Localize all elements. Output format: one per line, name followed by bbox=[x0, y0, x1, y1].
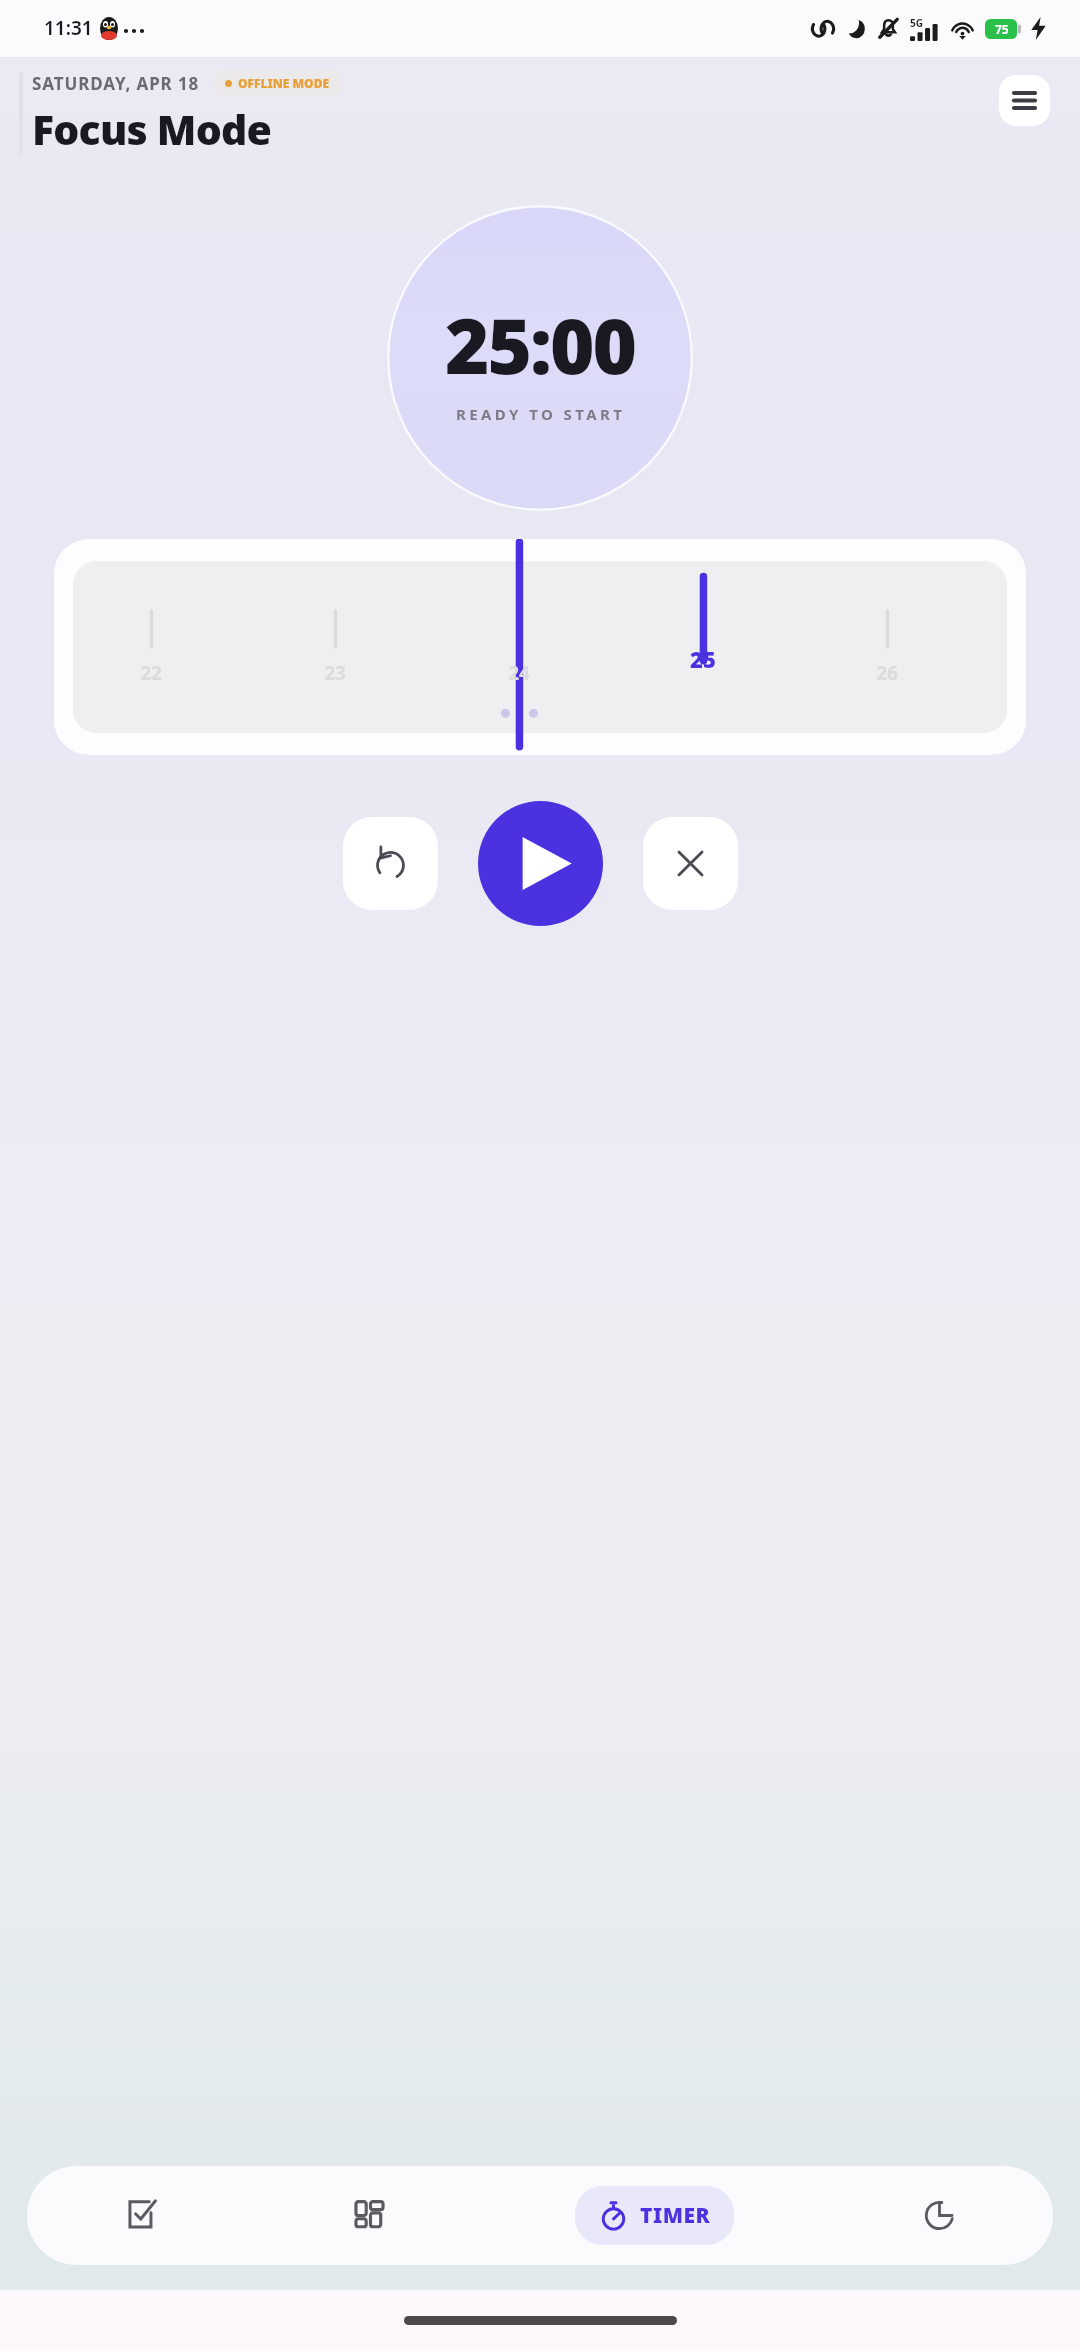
staticText: 22 bbox=[140, 660, 162, 686]
button[interactable]: Menu bbox=[999, 75, 1050, 126]
button[interactable]: Dashboard bbox=[255, 2166, 483, 2265]
staticText: 26 bbox=[876, 660, 898, 686]
staticText: 25:00 bbox=[445, 293, 636, 397]
button[interactable]: Stats bbox=[825, 2166, 1053, 2265]
button[interactable]: Start bbox=[478, 801, 603, 926]
button[interactable]: Cancel bbox=[643, 817, 738, 910]
staticText: READY TO START bbox=[456, 404, 626, 424]
staticText: SATURDAY, APR 18 bbox=[32, 72, 200, 95]
staticText: 23 bbox=[324, 660, 346, 686]
button[interactable]: Tasks bbox=[27, 2166, 255, 2265]
button[interactable]: Reset bbox=[343, 817, 438, 910]
staticText: OFFLINE MODE bbox=[238, 75, 330, 91]
button[interactable]: TIMER bbox=[575, 2186, 734, 2245]
staticText: 11:31 bbox=[44, 15, 93, 41]
button[interactable]: OFFLINE MODE bbox=[213, 70, 342, 96]
staticText: TIMER bbox=[640, 2201, 711, 2230]
staticText: 5G bbox=[910, 16, 923, 30]
staticText: 25 bbox=[690, 644, 716, 674]
staticText: 75 bbox=[995, 21, 1009, 37]
button[interactable]: 22 bbox=[54, 539, 1026, 755]
staticText: 24 bbox=[508, 660, 530, 686]
staticText: Focus Mode bbox=[32, 101, 272, 157]
